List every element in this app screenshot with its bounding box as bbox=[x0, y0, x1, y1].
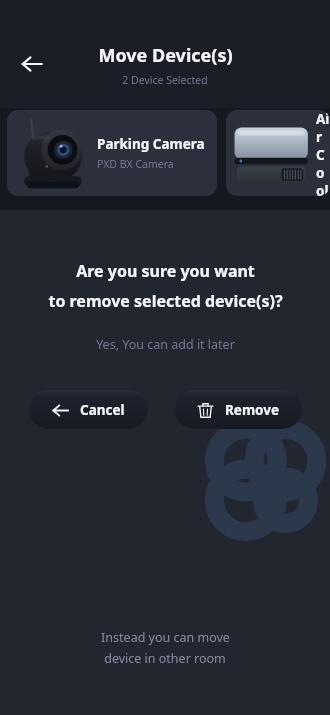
staticText: Move Device(s) bbox=[98, 43, 233, 68]
staticText: to remove selected device(s)? bbox=[48, 290, 283, 312]
staticText: device in other room bbox=[104, 650, 226, 667]
staticText: Instead you can move bbox=[101, 629, 230, 646]
button[interactable]: Back bbox=[10, 42, 54, 86]
button[interactable]: Parking Camera bbox=[7, 110, 217, 196]
staticText: Are you sure you want bbox=[76, 260, 255, 282]
button[interactable]: Air Cooler bbox=[226, 110, 330, 196]
staticText: Parking Camera bbox=[97, 135, 205, 153]
staticText: Cancel bbox=[80, 401, 125, 419]
staticText: PXD BX Camera bbox=[97, 157, 174, 171]
staticText: Air Cooler bbox=[316, 110, 330, 196]
button[interactable]: Remove bbox=[175, 390, 302, 429]
staticText: Yes, You can add it later bbox=[96, 336, 235, 353]
button[interactable]: Cancel bbox=[29, 390, 148, 429]
staticText: Remove bbox=[225, 401, 280, 419]
staticText: 2 Device Selected bbox=[122, 73, 208, 87]
